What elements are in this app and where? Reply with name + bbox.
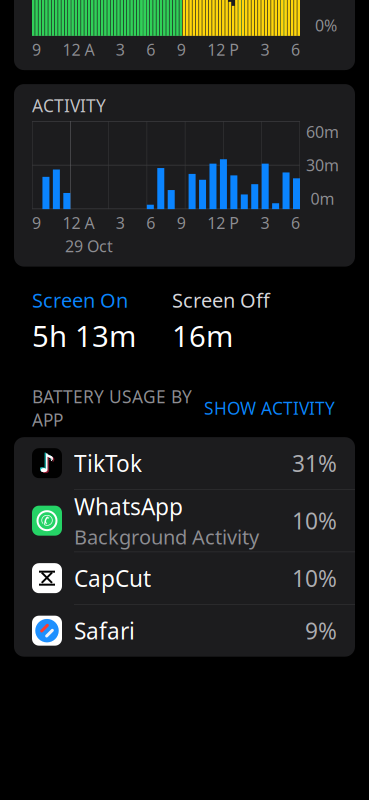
staticText: 6 <box>146 39 155 60</box>
button[interactable]: ✕ <box>14 552 355 605</box>
staticText: Background Activity <box>74 523 259 550</box>
staticText: Safari <box>74 616 135 646</box>
staticText: ACTIVITY <box>32 94 106 117</box>
button[interactable]: Safari <box>14 605 355 657</box>
staticText: 29 Oct <box>65 235 113 257</box>
staticText: BATTERY USAGE BY APP <box>32 385 192 431</box>
staticText: Screen Off <box>172 287 270 313</box>
staticText: 60m <box>306 121 339 142</box>
staticText: 3 <box>116 39 125 60</box>
staticText: ♪ <box>39 449 55 478</box>
staticText: 12 A <box>62 39 94 60</box>
staticText: 10% <box>292 563 337 593</box>
staticText: 10% <box>292 506 337 536</box>
button[interactable]: SHOW ACTIVITY <box>202 393 337 424</box>
staticText: 12 P <box>207 212 239 233</box>
staticText: Screen On <box>32 287 128 313</box>
staticText: ♪ <box>37 448 53 477</box>
staticText: 3 <box>261 39 270 60</box>
staticText: 3 <box>116 212 125 233</box>
staticText: ♪ <box>39 449 55 478</box>
staticText: 16m <box>172 316 233 355</box>
staticText: 9 <box>32 212 41 233</box>
staticText: 9 <box>177 39 186 60</box>
staticText: 30m <box>306 154 339 176</box>
staticText: 3 <box>261 212 270 233</box>
staticText: ✕ <box>38 567 55 589</box>
staticText: 6 <box>291 39 300 60</box>
staticText: 6 <box>146 212 155 233</box>
staticText: 9 <box>32 39 41 60</box>
staticText: 31% <box>292 448 337 478</box>
staticText: 12 A <box>62 212 94 233</box>
staticText: CapCut <box>74 563 151 593</box>
staticText: 0m <box>310 188 334 209</box>
staticText: WhatsApp <box>74 491 183 521</box>
staticText: 9% <box>305 616 337 646</box>
button[interactable]: ♪ <box>14 437 355 490</box>
staticText: SHOW ACTIVITY <box>204 397 335 420</box>
staticText: 12 P <box>207 39 239 60</box>
staticText: ✆ <box>41 512 53 529</box>
staticText: 9 <box>177 212 186 233</box>
staticText: 0% <box>315 15 337 36</box>
staticText: TikTok <box>74 448 142 478</box>
staticText: 5h 13m <box>32 316 136 355</box>
button[interactable]: ✆ <box>14 490 355 552</box>
staticText: ♪ <box>40 450 56 479</box>
staticText: 6 <box>291 212 300 233</box>
